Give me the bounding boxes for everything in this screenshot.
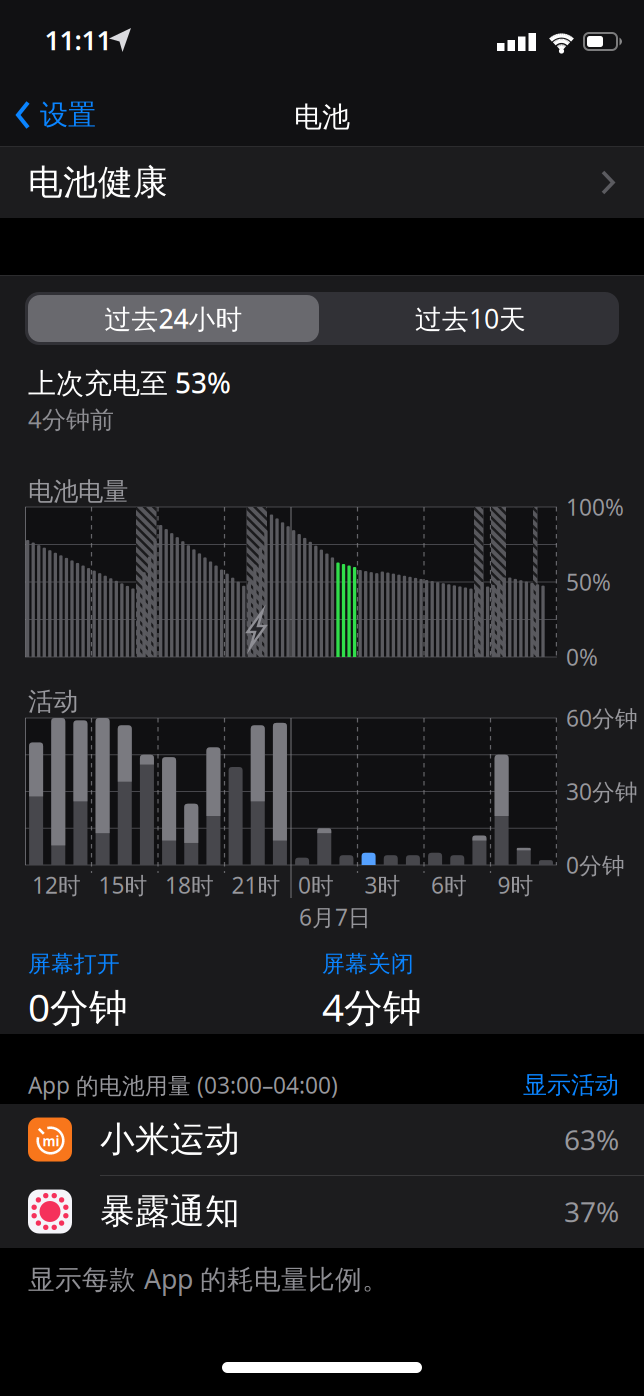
button[interactable]: mi xyxy=(0,1104,644,1175)
staticText: 30分钟 xyxy=(566,776,638,806)
staticText: 4分钟前 xyxy=(28,403,114,435)
staticText: 37% xyxy=(564,1193,619,1230)
staticText: 60分钟 xyxy=(566,703,638,733)
staticText: 4分钟 xyxy=(322,981,422,1032)
staticText: 6月7日 xyxy=(299,902,371,932)
staticText: 100% xyxy=(566,492,624,522)
staticText: 过去24小时 xyxy=(104,301,242,336)
staticText: App 的电池用量 (03:00–04:00) xyxy=(28,1070,338,1100)
staticText: 电池健康 xyxy=(28,161,168,204)
staticText: 21时 xyxy=(231,870,280,900)
staticText: 0时 xyxy=(298,870,334,900)
staticText: 50% xyxy=(566,567,611,597)
button[interactable]: 过去10天 xyxy=(325,295,616,342)
staticText: 3时 xyxy=(364,870,400,900)
staticText: 显示活动 xyxy=(523,1070,619,1100)
staticText: 0分钟 xyxy=(28,981,128,1032)
staticText: 屏幕打开 xyxy=(28,950,120,978)
staticText: 15时 xyxy=(98,870,147,900)
staticText: mi xyxy=(42,1132,59,1150)
staticText: 0分钟 xyxy=(566,850,625,880)
staticText: 屏幕关闭 xyxy=(322,950,414,978)
staticText: 11:11 xyxy=(44,22,111,58)
staticText: 暴露通知 xyxy=(100,1190,240,1233)
button[interactable]: 过去24小时 xyxy=(28,295,319,342)
staticText: 小米运动 xyxy=(100,1118,240,1161)
staticText: 过去10天 xyxy=(415,301,526,336)
button[interactable]: 暴露通知 xyxy=(0,1176,644,1247)
button[interactable]: 返回设置 xyxy=(16,93,96,137)
staticText: 6时 xyxy=(431,870,467,900)
staticText: 上次充电至 53% xyxy=(28,364,231,401)
staticText: 63% xyxy=(564,1121,619,1158)
staticText: 显示每款 App 的耗电量比例。 xyxy=(28,1261,389,1296)
staticText: 活动 xyxy=(28,686,78,717)
staticText: 0% xyxy=(566,642,598,672)
staticText: 18时 xyxy=(165,870,214,900)
staticText: 9时 xyxy=(497,870,533,900)
staticText: 12时 xyxy=(32,870,81,900)
staticText: 电池电量 xyxy=(28,476,128,507)
button[interactable]: 电池健康 xyxy=(0,147,644,218)
staticText: 设置 xyxy=(40,98,96,132)
button[interactable]: 显示活动 xyxy=(459,1071,619,1099)
staticText: 电池 xyxy=(294,100,350,134)
